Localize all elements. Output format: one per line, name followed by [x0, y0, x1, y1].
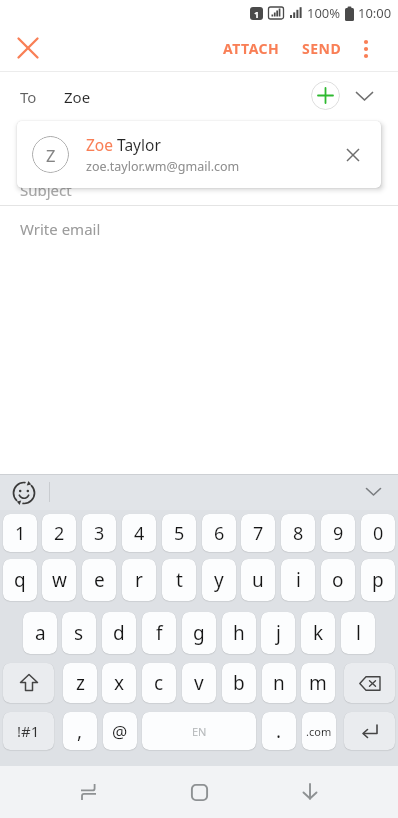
button[interactable]: j [261, 612, 295, 654]
staticText: o [332, 567, 344, 593]
button[interactable]: l [341, 612, 375, 654]
staticText: l [356, 620, 361, 646]
staticText: Zoe [86, 134, 113, 155]
button[interactable]: 0 [361, 514, 395, 552]
button[interactable]: @ [103, 712, 137, 750]
button[interactable]: 1 [3, 514, 37, 552]
button[interactable]: t [162, 559, 196, 601]
staticText: a [35, 620, 46, 646]
button[interactable]: 4 [122, 514, 156, 552]
staticText: Subject [20, 180, 72, 200]
button[interactable]: k [301, 612, 335, 654]
button[interactable]: 6 [202, 514, 236, 552]
button[interactable]: m [301, 663, 335, 703]
staticText: z [76, 670, 85, 696]
staticText: 1 [254, 8, 260, 20]
button[interactable]: z [63, 663, 97, 703]
staticText: x [114, 670, 125, 696]
staticText: q [14, 567, 26, 593]
staticText: s [74, 620, 84, 646]
staticText: i [296, 567, 301, 593]
button[interactable]: n [262, 663, 296, 703]
staticText: To [20, 87, 37, 107]
staticText: 3 [94, 521, 105, 546]
staticText: Z [46, 144, 56, 166]
button[interactable]: 7 [241, 514, 275, 552]
button[interactable]: p [361, 559, 395, 601]
button[interactable] [2, 477, 46, 508]
staticText: b [233, 670, 245, 696]
button[interactable]: e [82, 559, 116, 601]
button[interactable]: 8 [281, 514, 315, 552]
button[interactable] [352, 84, 376, 108]
staticText: 9 [333, 521, 344, 546]
button[interactable]: c [142, 663, 176, 703]
staticText: 6 [214, 521, 225, 546]
staticText: . [276, 718, 282, 744]
button[interactable]: w [42, 559, 76, 601]
staticText: u [252, 567, 264, 593]
button[interactable]: d [102, 612, 136, 654]
button[interactable] [358, 477, 388, 507]
staticText: !#1 [17, 721, 40, 741]
button[interactable]: x [102, 663, 136, 703]
button[interactable] [285, 767, 335, 817]
button[interactable]: Z [17, 121, 381, 188]
button[interactable] [8, 28, 48, 68]
button[interactable]: . [262, 712, 296, 750]
button[interactable]: r [122, 559, 156, 601]
button[interactable] [3, 663, 54, 703]
button[interactable]: v [182, 663, 216, 703]
staticText: j [276, 620, 281, 646]
button[interactable] [311, 81, 340, 110]
staticText: k [313, 620, 324, 646]
button[interactable]: i [281, 559, 315, 601]
staticText: 1 [15, 521, 26, 546]
button[interactable] [333, 135, 373, 175]
button[interactable]: y [202, 559, 236, 601]
button[interactable]: SEND [296, 33, 348, 64]
button[interactable]: g [182, 612, 216, 654]
staticText: h [233, 620, 245, 646]
staticText: d [113, 620, 125, 646]
button[interactable] [63, 767, 113, 817]
button[interactable]: a [23, 612, 57, 654]
button[interactable]: h [222, 612, 256, 654]
button[interactable]: EN [142, 712, 256, 750]
staticText: Write email [20, 219, 101, 239]
button[interactable]: 5 [162, 514, 196, 552]
button[interactable]: 9 [321, 514, 355, 552]
button[interactable] [174, 767, 224, 817]
button[interactable]: f [142, 612, 176, 654]
staticText: Taylor [113, 134, 161, 155]
staticText: 5 [174, 521, 185, 546]
button[interactable]: u [241, 559, 275, 601]
staticText: 2 [54, 521, 65, 546]
staticText: 10:00 [358, 4, 392, 22]
button[interactable]: q [3, 559, 37, 601]
button[interactable]: !#1 [3, 712, 54, 750]
staticText: 8 [293, 521, 304, 546]
button[interactable]: .com [302, 712, 336, 750]
button[interactable]: , [63, 712, 97, 750]
button[interactable] [352, 35, 380, 63]
button[interactable]: ATTACH [217, 33, 286, 64]
button[interactable]: 2 [42, 514, 76, 552]
button[interactable]: s [62, 612, 96, 654]
staticText: ATTACH [223, 39, 280, 58]
staticText: t [176, 567, 183, 593]
staticText: , [77, 718, 83, 744]
button[interactable]: 3 [82, 514, 116, 552]
staticText: y [214, 567, 224, 593]
button[interactable]: b [222, 663, 256, 703]
staticText: 0 [373, 521, 384, 546]
staticText: 7 [253, 521, 264, 546]
staticText: p [372, 567, 384, 593]
staticText: e [94, 567, 105, 593]
staticText: EN [192, 724, 207, 739]
button[interactable]: o [321, 559, 355, 601]
button[interactable] [344, 712, 395, 750]
staticText: g [193, 620, 205, 646]
button[interactable] [344, 663, 395, 703]
staticText: w [52, 567, 67, 593]
